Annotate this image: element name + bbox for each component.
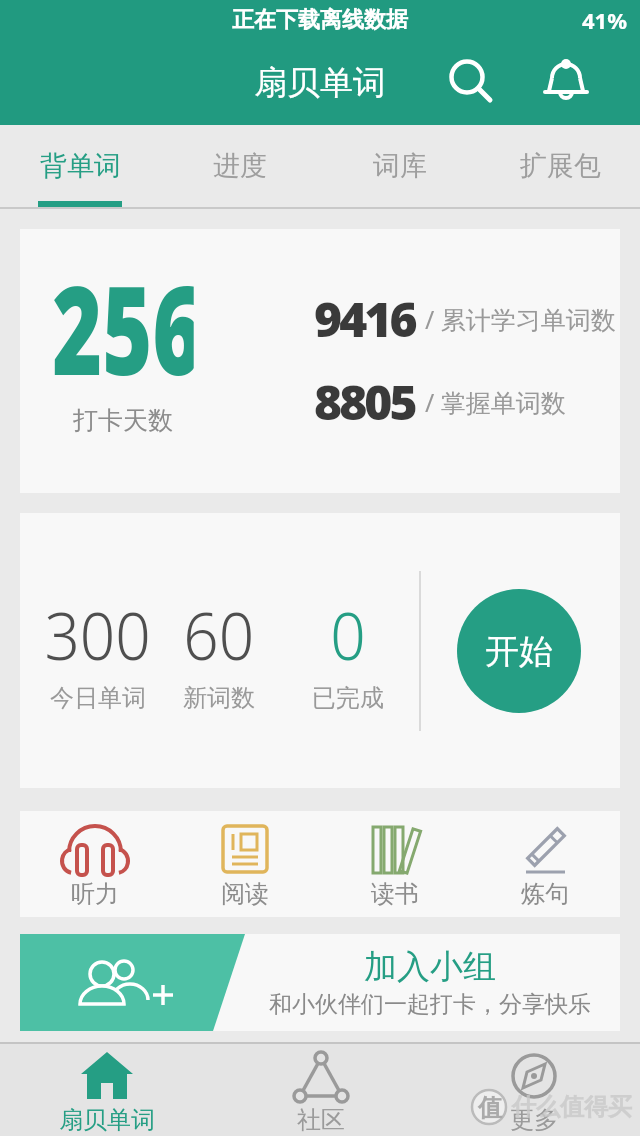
staticText: / 掌握单词数 <box>425 385 566 419</box>
button[interactable]: 听力 <box>20 811 170 917</box>
button[interactable]: 进度 <box>160 125 320 207</box>
button[interactable]: 256 <box>20 229 620 493</box>
staticText: 扇贝单词 <box>254 62 386 104</box>
button[interactable]: 社区 <box>214 1044 427 1136</box>
staticText: 开始 <box>485 630 553 673</box>
staticText: 进度 <box>213 149 267 183</box>
staticText: 300 <box>44 589 152 679</box>
staticText: 256 <box>52 245 194 411</box>
button[interactable] <box>538 53 594 109</box>
staticText: 正在下载离线数据 <box>232 6 408 34</box>
staticText: 读书 <box>371 879 419 909</box>
button[interactable]: 开始 <box>457 589 581 713</box>
staticText: / 累计学习单词数 <box>425 302 616 336</box>
staticText: 什么值得买 <box>512 1092 632 1122</box>
staticText: 新词数 <box>183 683 255 713</box>
staticText: 加入小组 <box>364 946 496 988</box>
button[interactable] <box>440 53 496 109</box>
staticText: 已完成 <box>312 683 384 713</box>
staticText: 词库 <box>373 149 427 183</box>
staticText: 更多 <box>510 1105 558 1135</box>
staticText: 41% <box>582 5 628 35</box>
button[interactable]: 阅读 <box>170 811 320 917</box>
staticText: 阅读 <box>221 879 269 909</box>
staticText: 和小伙伴们一起打卡，分享快乐 <box>269 990 591 1019</box>
button[interactable]: 读书 <box>320 811 470 917</box>
staticText: 今日单词 <box>50 683 146 713</box>
staticText: 打卡天数 <box>73 405 173 436</box>
staticText: 9416 <box>314 286 415 351</box>
staticText: 0 <box>330 589 366 679</box>
staticText: 社区 <box>297 1105 345 1135</box>
button[interactable]: 扇贝单词 <box>0 1044 214 1136</box>
staticText: 炼句 <box>521 879 569 909</box>
button[interactable]: 词库 <box>320 125 480 207</box>
staticText: 听力 <box>71 879 119 909</box>
staticText: 60 <box>183 589 255 679</box>
button[interactable]: 背单词 <box>0 125 160 207</box>
button[interactable]: 更多 <box>427 1044 640 1136</box>
staticText: 8805 <box>314 369 415 434</box>
staticText: 值 <box>478 1093 502 1123</box>
staticText: 扇贝单词 <box>59 1105 155 1135</box>
staticText: 背单词 <box>40 149 121 183</box>
button[interactable]: 炼句 <box>470 811 620 917</box>
button[interactable]: 扩展包 <box>480 125 640 207</box>
button[interactable]: 加入小组 <box>20 934 620 1031</box>
staticText: 扩展包 <box>520 149 601 183</box>
